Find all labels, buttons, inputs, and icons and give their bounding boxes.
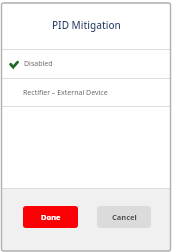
staticText: Disabled — [24, 59, 53, 69]
staticText: Rectifier – External Device — [23, 88, 108, 98]
button[interactable]: Rectifier – External Device — [2, 79, 170, 106]
staticText: PID Mitigation — [52, 18, 121, 32]
staticText: Cancel — [112, 212, 137, 222]
button[interactable]: Done — [23, 206, 78, 228]
other: Selected — [10, 61, 18, 68]
staticText: Done — [41, 212, 61, 222]
button[interactable]: Cancel — [97, 206, 151, 228]
button[interactable]: Selected — [2, 50, 170, 78]
